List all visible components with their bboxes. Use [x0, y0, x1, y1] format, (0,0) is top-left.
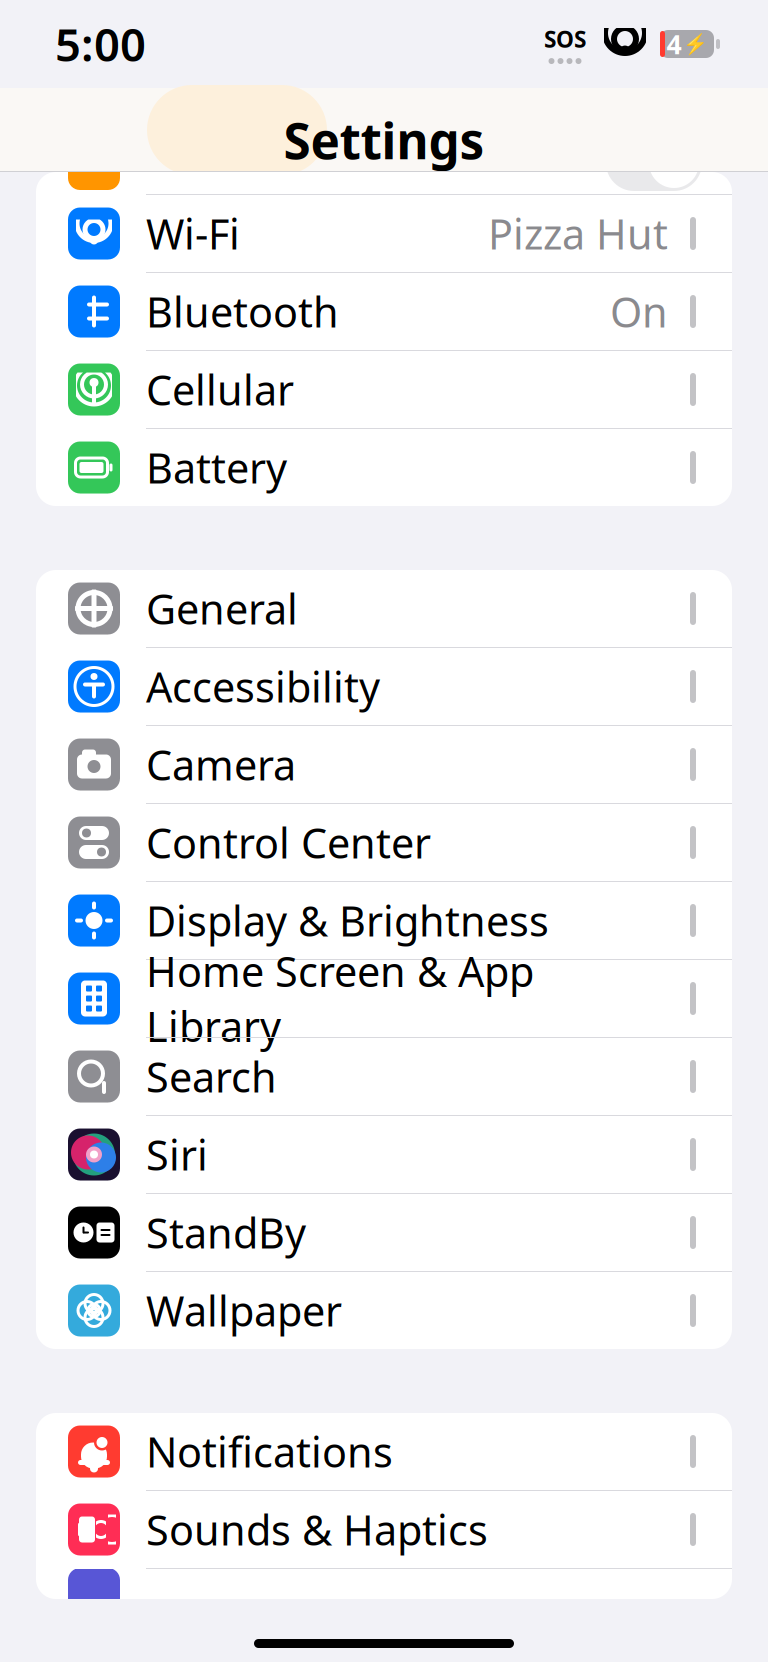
button[interactable]: General: [36, 570, 732, 647]
staticText: Search: [146, 1049, 277, 1104]
staticText: Notifications: [146, 1424, 393, 1479]
button[interactable]: Accessibility: [36, 648, 732, 725]
staticText: General: [146, 581, 298, 636]
staticText: Siri: [146, 1127, 208, 1182]
button[interactable]: Sounds & Haptics: [36, 1491, 732, 1568]
button[interactable]: Camera: [36, 726, 732, 803]
staticText: Pizza Hut: [488, 206, 668, 261]
staticText: Cellular: [146, 362, 294, 417]
staticText: Bluetooth: [146, 284, 339, 339]
button[interactable]: Bluetooth: [36, 273, 732, 350]
button[interactable]: Wi-Fi: [36, 195, 732, 272]
button[interactable]: Battery: [36, 429, 732, 506]
staticText: Settings: [283, 107, 484, 173]
button[interactable]: Display & Brightness: [36, 882, 732, 959]
button[interactable]: Notifications: [36, 1413, 732, 1490]
button[interactable]: Home Screen & App Library: [36, 960, 732, 1037]
button[interactable]: Siri: [36, 1116, 732, 1193]
staticText: Camera: [146, 737, 296, 792]
staticText: On: [610, 284, 668, 339]
staticText: Wi-Fi: [146, 206, 240, 261]
staticText: Sounds & Haptics: [146, 1502, 488, 1557]
staticText: Display & Brightness: [146, 893, 549, 948]
staticText: ⚡: [682, 33, 707, 55]
button[interactable]: Search: [36, 1038, 732, 1115]
button[interactable]: Control Center: [36, 804, 732, 881]
staticText: 5:00: [55, 14, 146, 74]
staticText: Accessibility: [146, 659, 380, 714]
staticText: Battery: [146, 440, 287, 495]
button[interactable]: Cellular: [36, 351, 732, 428]
staticText: Wallpaper: [146, 1283, 342, 1338]
staticText: Control Center: [146, 815, 431, 870]
button[interactable]: Wallpaper: [36, 1272, 732, 1349]
staticText: Home Screen & App Library: [146, 944, 534, 1053]
staticText: 4: [666, 26, 681, 62]
staticText: SOS: [544, 24, 586, 54]
button[interactable]: StandBy: [36, 1194, 732, 1271]
staticText: StandBy: [146, 1205, 306, 1260]
